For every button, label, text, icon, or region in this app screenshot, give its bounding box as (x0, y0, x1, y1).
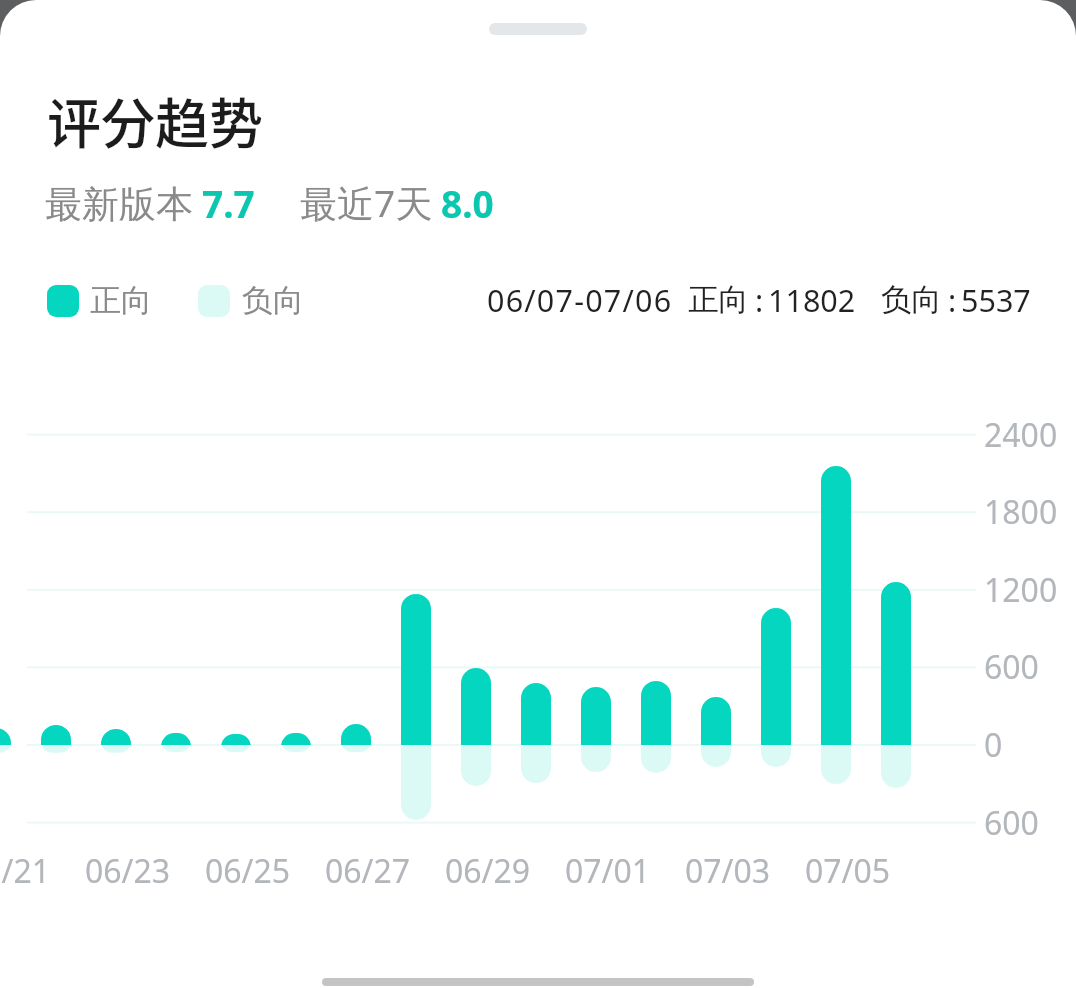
staticText: 5537 (961, 279, 1031, 321)
staticText: 评分趋势 (47, 81, 263, 159)
button[interactable]: 正向 (47, 281, 152, 320)
staticText: 负向 (881, 281, 942, 319)
staticText: : (948, 279, 957, 321)
other: Rating trend chart (0, 0, 1076, 988)
button[interactable]: Drag handle (489, 23, 587, 35)
staticText: 正向 (90, 281, 152, 320)
staticText: 8.0 (441, 178, 494, 228)
staticText: 最新版本 (45, 181, 193, 228)
staticText: 7.7 (202, 178, 255, 228)
staticText: 正向 (688, 281, 749, 319)
staticText: 06/07-07/06 (487, 279, 673, 321)
staticText: 负向 (242, 281, 304, 320)
button[interactable]: 负向 (198, 281, 304, 320)
staticText: 最近7天 (300, 177, 433, 228)
staticText: 11802 (768, 279, 856, 321)
staticText: : (755, 279, 764, 321)
